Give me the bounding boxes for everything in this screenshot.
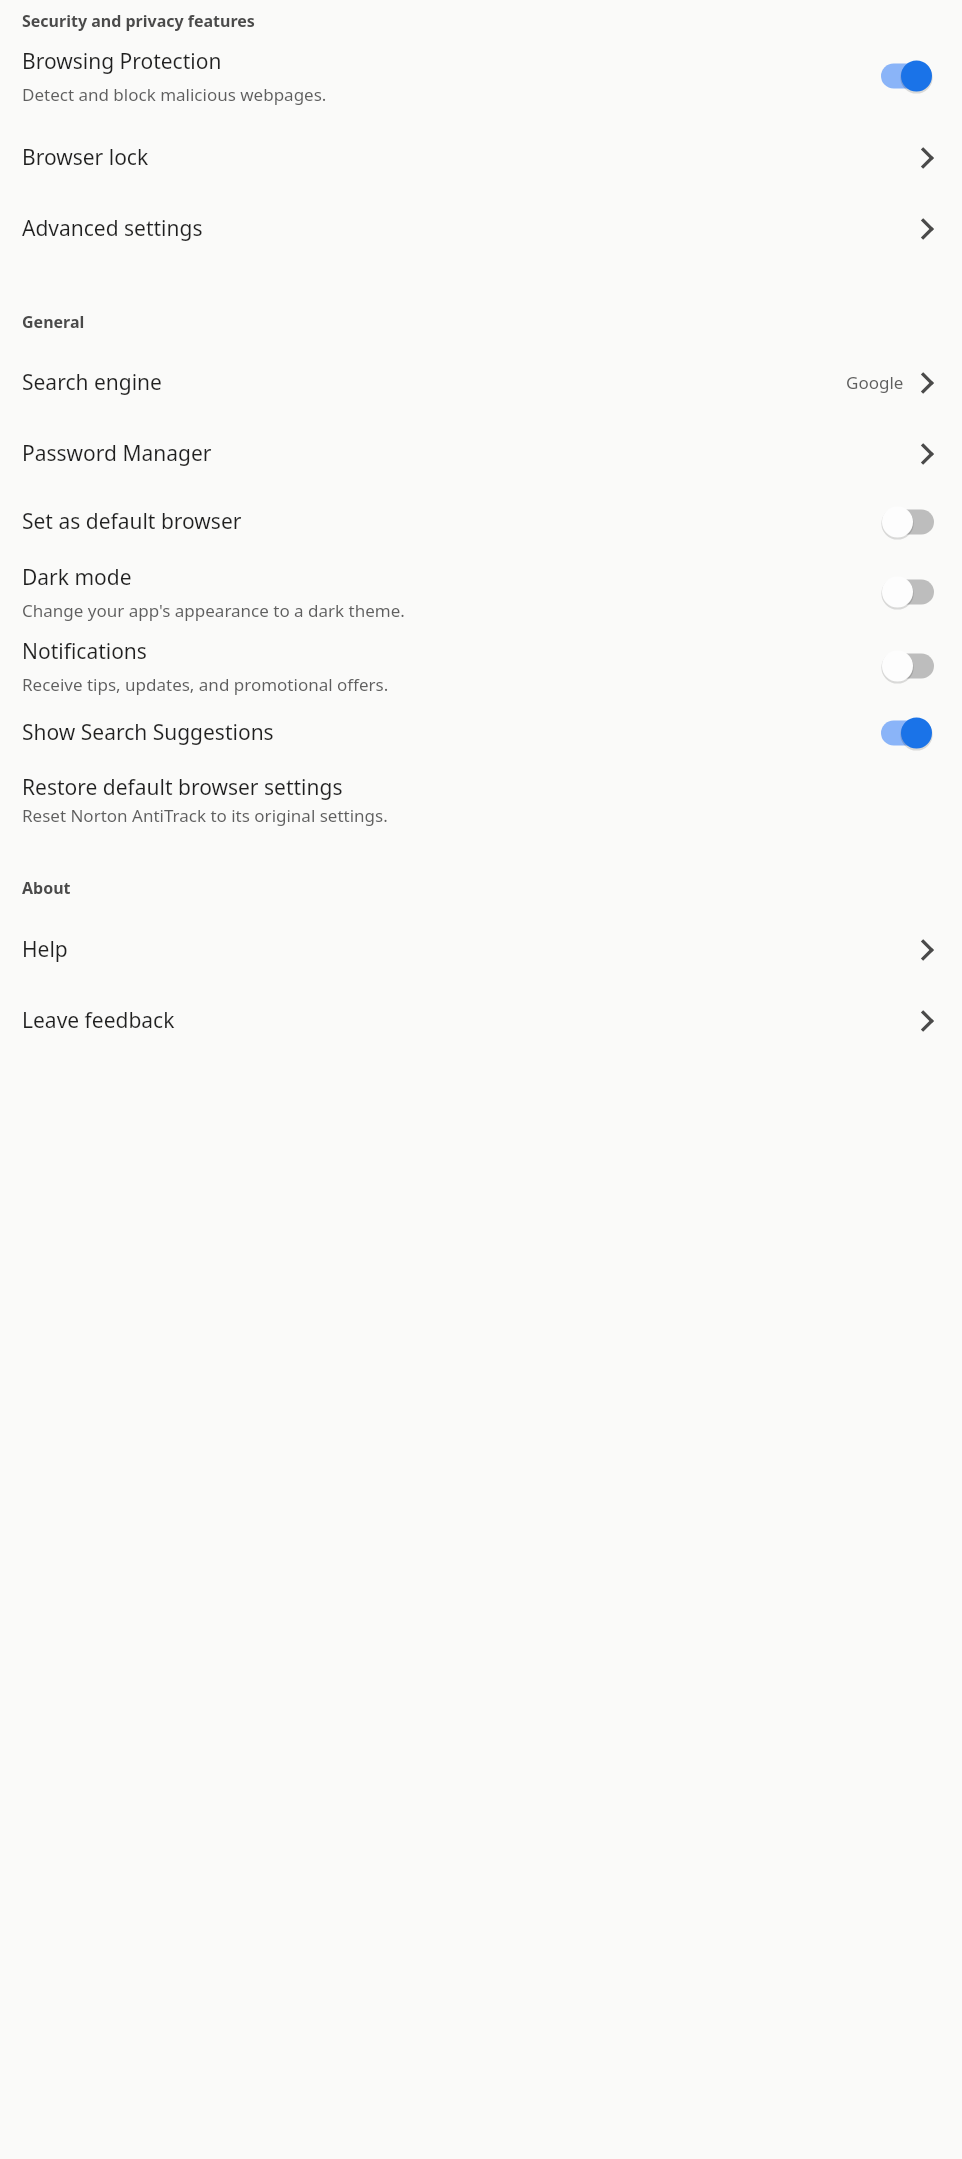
staticText: Show Search Suggestions [22,718,274,747]
staticText: Reset Norton AntiTrack to its original s… [22,804,388,827]
staticText: Browser lock [22,143,149,172]
button[interactable]: Restore default browser settings [0,773,962,827]
button[interactable]: Notifications [0,635,962,697]
staticText: Change your app's appearance to a dark t… [22,599,405,622]
staticText: Set as default browser [22,507,242,536]
staticText: Advanced settings [22,214,203,243]
staticText: Notifications [22,637,147,666]
button[interactable]: Leave feedback [0,995,962,1046]
staticText: Receive tips, updates, and promotional o… [22,673,389,696]
staticText: Detect and block malicious webpages. [22,83,327,106]
staticText: Google [846,371,904,394]
staticText: Browsing Protection [22,47,222,76]
staticText: Restore default browser settings [22,773,343,802]
staticText: Help [22,935,68,964]
staticText: Security and privacy features [22,10,255,32]
staticText: General [22,311,85,333]
button[interactable]: Show Search Suggestions [0,709,962,756]
staticText: Password Manager [22,439,212,468]
staticText: Leave feedback [22,1006,175,1035]
button[interactable]: Password Manager [0,428,962,479]
button[interactable]: Set as default browser [0,498,962,545]
staticText: Dark mode [22,563,132,592]
staticText: About [22,877,71,899]
button[interactable]: Browser lock [0,132,962,183]
button[interactable]: Dark mode [0,561,962,623]
button[interactable]: Browsing Protection [0,46,962,106]
button[interactable]: Search engine [0,357,962,408]
button[interactable]: Help [0,924,962,975]
button[interactable]: Advanced settings [0,203,962,254]
staticText: Search engine [22,368,162,397]
